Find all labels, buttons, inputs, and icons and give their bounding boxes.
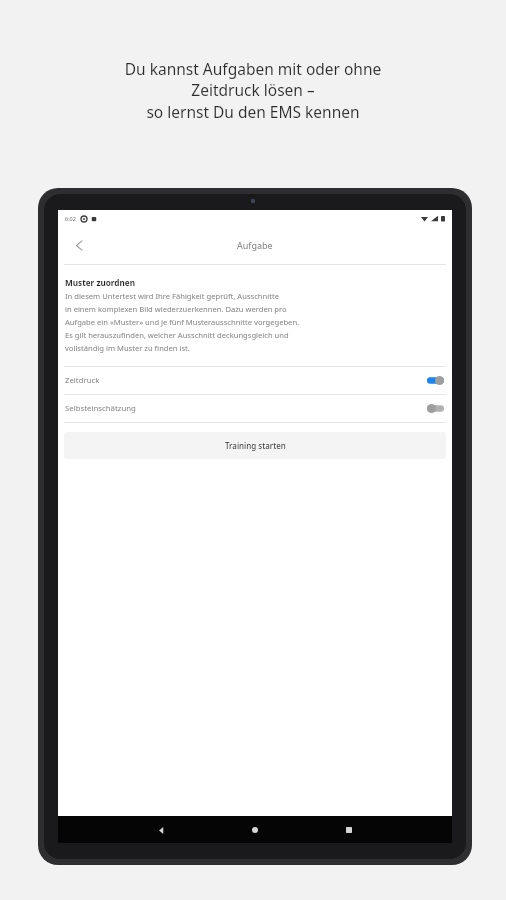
button[interactable]: Home (245, 820, 265, 840)
button[interactable]: On (427, 376, 444, 385)
staticText: Training starten (225, 440, 286, 451)
button[interactable]: Selbsteinschätzung (58, 395, 452, 422)
staticText: Zeitdruck (65, 375, 100, 386)
button[interactable]: Recent apps (339, 820, 359, 840)
button[interactable]: Back (64, 230, 94, 260)
button[interactable]: Off (427, 404, 444, 413)
staticText: In diesem Untertest wird Ihre Fähigkeit … (65, 291, 300, 353)
button[interactable]: Training starten (64, 432, 446, 459)
staticText: Du kannst Aufgaben mit oder ohne Zeitdru… (0, 58, 506, 123)
staticText: 6:02 (65, 215, 76, 222)
staticText: Aufgabe (237, 239, 273, 251)
button[interactable]: Back (151, 820, 171, 840)
staticText: Muster zuordnen (65, 277, 136, 288)
staticText: Selbsteinschätzung (65, 403, 136, 414)
button[interactable]: Zeitdruck (58, 367, 452, 394)
